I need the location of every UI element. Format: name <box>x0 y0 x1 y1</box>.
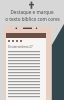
staticText: Destaque e marque <box>10 9 54 15</box>
staticText: Deuteronômio 27 <box>8 45 33 49</box>
staticText: o texto bíblico com cores <box>5 16 60 22</box>
